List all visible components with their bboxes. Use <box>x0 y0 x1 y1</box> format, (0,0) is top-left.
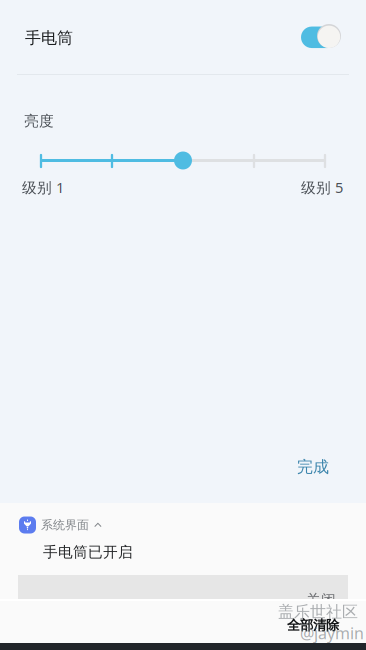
staticText: 全部清除 <box>287 617 339 633</box>
button[interactable]: 全部清除 <box>281 613 345 637</box>
staticText: 系统界面 <box>41 518 89 532</box>
staticText: 关闭 <box>306 591 336 609</box>
staticText: 级别 5 <box>301 177 343 197</box>
staticText: 亮度 <box>24 112 54 130</box>
staticText: 手电筒已开启 <box>43 543 133 561</box>
staticText: 盖乐世社区 <box>278 602 358 622</box>
button[interactable]: 系统界面 收起 <box>19 516 169 534</box>
button[interactable]: 完成 <box>283 447 343 487</box>
staticText: 级别 1 <box>22 177 64 197</box>
staticText: 手电筒 <box>25 28 73 48</box>
button[interactable]: 关闭 <box>300 589 342 611</box>
staticText: @jaymin <box>300 622 364 644</box>
button[interactable]: 手电筒开关 <box>293 15 349 55</box>
staticText: 完成 <box>297 457 329 477</box>
